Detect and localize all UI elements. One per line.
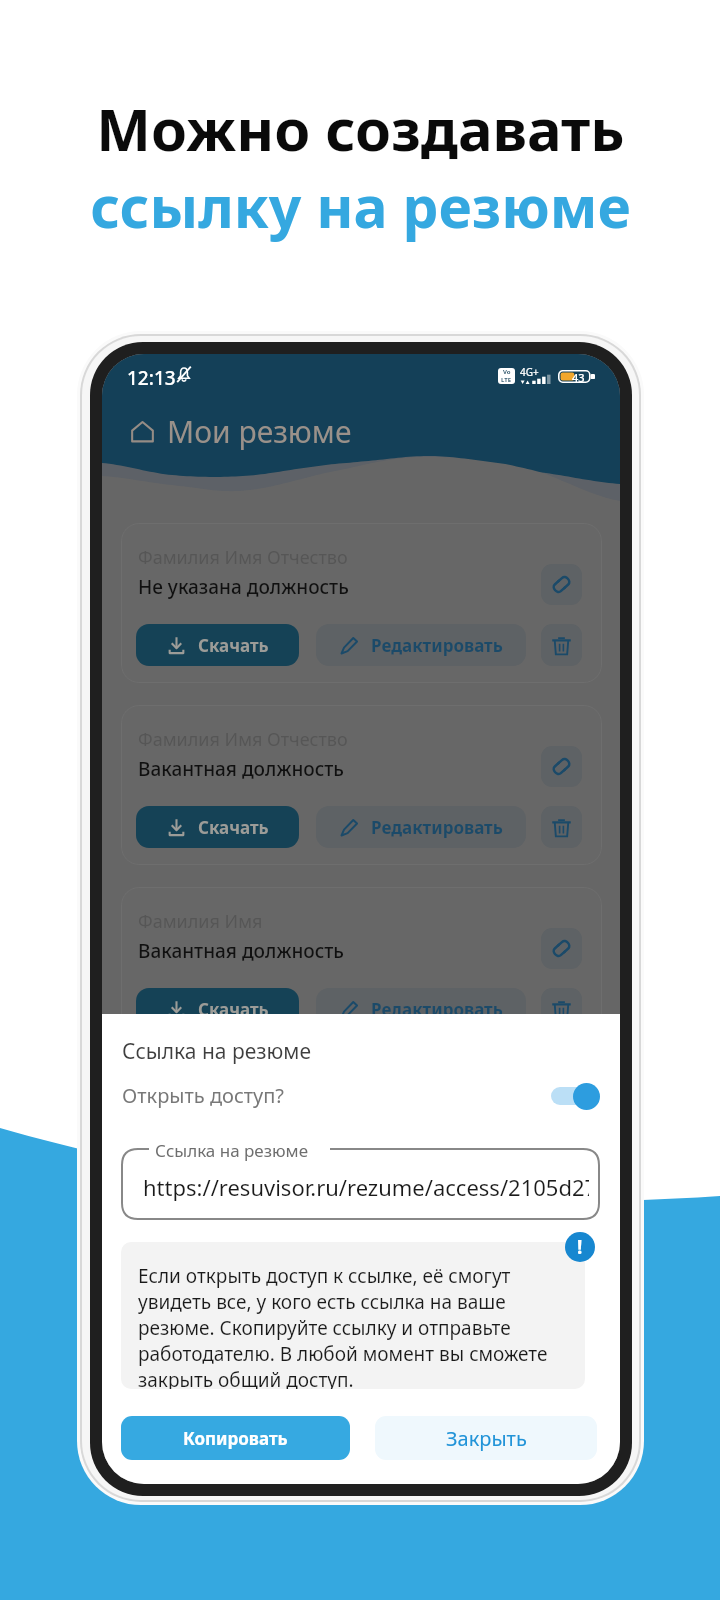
- button[interactable]: Удалить: [541, 988, 582, 1030]
- staticText: Скачать: [198, 634, 269, 657]
- staticText: 12:13: [127, 365, 176, 391]
- staticText: Вакантная должность: [138, 756, 344, 782]
- staticText: 43: [572, 370, 585, 383]
- staticText: 4G+: [520, 365, 539, 379]
- button[interactable]: Редактировать: [316, 624, 526, 666]
- staticText: Фамилия Имя Отчество: [138, 545, 348, 570]
- staticText: Скачать: [198, 998, 269, 1021]
- button[interactable]: Удалить: [541, 806, 582, 848]
- staticText: LTE: [501, 376, 512, 384]
- staticText: Скачать: [198, 816, 269, 839]
- staticText: Открыть доступ?: [122, 1082, 285, 1109]
- staticText: Закрыть: [446, 1425, 527, 1452]
- staticText: Можно создавать: [96, 89, 625, 168]
- staticText: Ссылка на резюме: [122, 1037, 312, 1066]
- button[interactable]: Редактировать: [316, 806, 526, 848]
- button[interactable]: Копировать: [121, 1416, 350, 1460]
- staticText: Если открыть доступ к ссылке, её смогут …: [138, 1263, 562, 1389]
- staticText: !: [577, 1234, 583, 1260]
- staticText: Ссылка на резюме: [155, 1139, 309, 1162]
- staticText: Не указана должность: [138, 574, 349, 600]
- staticText: Вакантная должность: [138, 938, 344, 964]
- staticText: ссылку на резюме: [90, 167, 631, 245]
- button[interactable]: Редактировать: [316, 988, 526, 1030]
- staticText: Фамилия Имя Отчество: [138, 727, 348, 752]
- staticText: Редактировать: [371, 998, 503, 1021]
- staticText: Vo: [503, 368, 511, 376]
- button[interactable]: Ссылка на резюме: [541, 746, 582, 787]
- staticText: Редактировать: [371, 634, 503, 657]
- staticText: https://resuvisor.ru/rezume/access/2105d…: [143, 1172, 589, 1202]
- staticText: Фамилия Имя: [138, 909, 263, 934]
- staticText: Редактировать: [371, 816, 503, 839]
- button[interactable]: Скачать: [136, 806, 299, 848]
- button[interactable]: Удалить: [541, 624, 582, 666]
- button[interactable]: Ссылка на резюме: [541, 928, 582, 969]
- button[interactable]: Ссылка на резюме: [541, 564, 582, 605]
- button[interactable]: Скачать: [136, 988, 299, 1030]
- button[interactable]: Закрыть: [375, 1416, 597, 1460]
- staticText: Копировать: [183, 1427, 288, 1450]
- staticText: Мои резюме: [167, 411, 352, 452]
- button[interactable]: Скачать: [136, 624, 299, 666]
- button[interactable]: Открыть доступ: [551, 1082, 600, 1110]
